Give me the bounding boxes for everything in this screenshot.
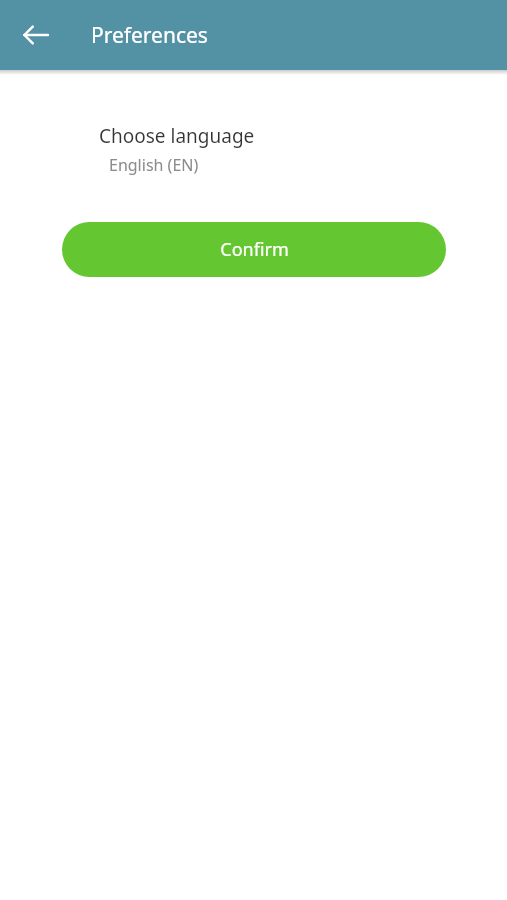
staticText: Preferences: [91, 21, 208, 50]
button[interactable]: English (EN): [109, 154, 199, 176]
staticText: Choose language: [99, 123, 255, 149]
staticText: Confirm: [220, 237, 289, 262]
button[interactable]: Confirm: [62, 222, 446, 277]
button[interactable]: Back: [12, 11, 60, 59]
